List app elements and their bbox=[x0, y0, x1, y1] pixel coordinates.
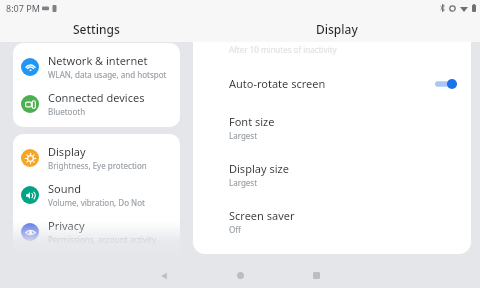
button[interactable]: Home bbox=[218, 263, 262, 288]
staticText: Display size bbox=[229, 161, 289, 176]
staticText: Off bbox=[229, 224, 241, 235]
staticText: WLAN, data usage, and hotspot bbox=[48, 69, 167, 80]
staticText: Sound bbox=[48, 181, 82, 196]
button[interactable]: Auto-rotate screen bbox=[229, 73, 457, 94]
button[interactable]: Auto-rotate screen toggle bbox=[435, 78, 457, 90]
button[interactable]: Recent apps bbox=[294, 263, 338, 288]
staticText: Screen saver bbox=[229, 208, 295, 223]
staticText: Connected devices bbox=[48, 90, 145, 105]
button[interactable]: Sound bbox=[13, 176, 180, 213]
staticText: Network & internet bbox=[48, 53, 148, 68]
staticText: Font size bbox=[229, 114, 275, 129]
button[interactable]: Display bbox=[13, 139, 180, 176]
button[interactable]: Font size bbox=[229, 114, 457, 141]
staticText: Volume, vibration, Do Not bbox=[48, 197, 145, 208]
button[interactable]: Connected devices bbox=[13, 85, 180, 122]
button[interactable]: Network & internet bbox=[13, 48, 180, 85]
button[interactable]: Display size bbox=[229, 161, 457, 188]
staticText: Bluetooth bbox=[48, 106, 86, 117]
staticText: Brightness, Eye protection bbox=[48, 160, 147, 171]
button[interactable]: Screen saver bbox=[229, 208, 457, 235]
staticText: Auto-rotate screen bbox=[229, 76, 435, 91]
staticText: Largest bbox=[229, 177, 258, 188]
staticText: 8:07 PM bbox=[6, 2, 40, 14]
button[interactable]: Back bbox=[142, 263, 186, 288]
staticText: Largest bbox=[229, 130, 258, 141]
staticText: Privacy bbox=[48, 218, 85, 233]
staticText: Permissions, account activity, bbox=[48, 234, 158, 245]
staticText: Display bbox=[316, 21, 358, 37]
staticText: After 10 minutes of inactivity bbox=[229, 44, 337, 55]
staticText: Settings bbox=[73, 21, 120, 37]
staticText: Display bbox=[48, 144, 86, 159]
button[interactable]: Privacy bbox=[13, 213, 180, 250]
